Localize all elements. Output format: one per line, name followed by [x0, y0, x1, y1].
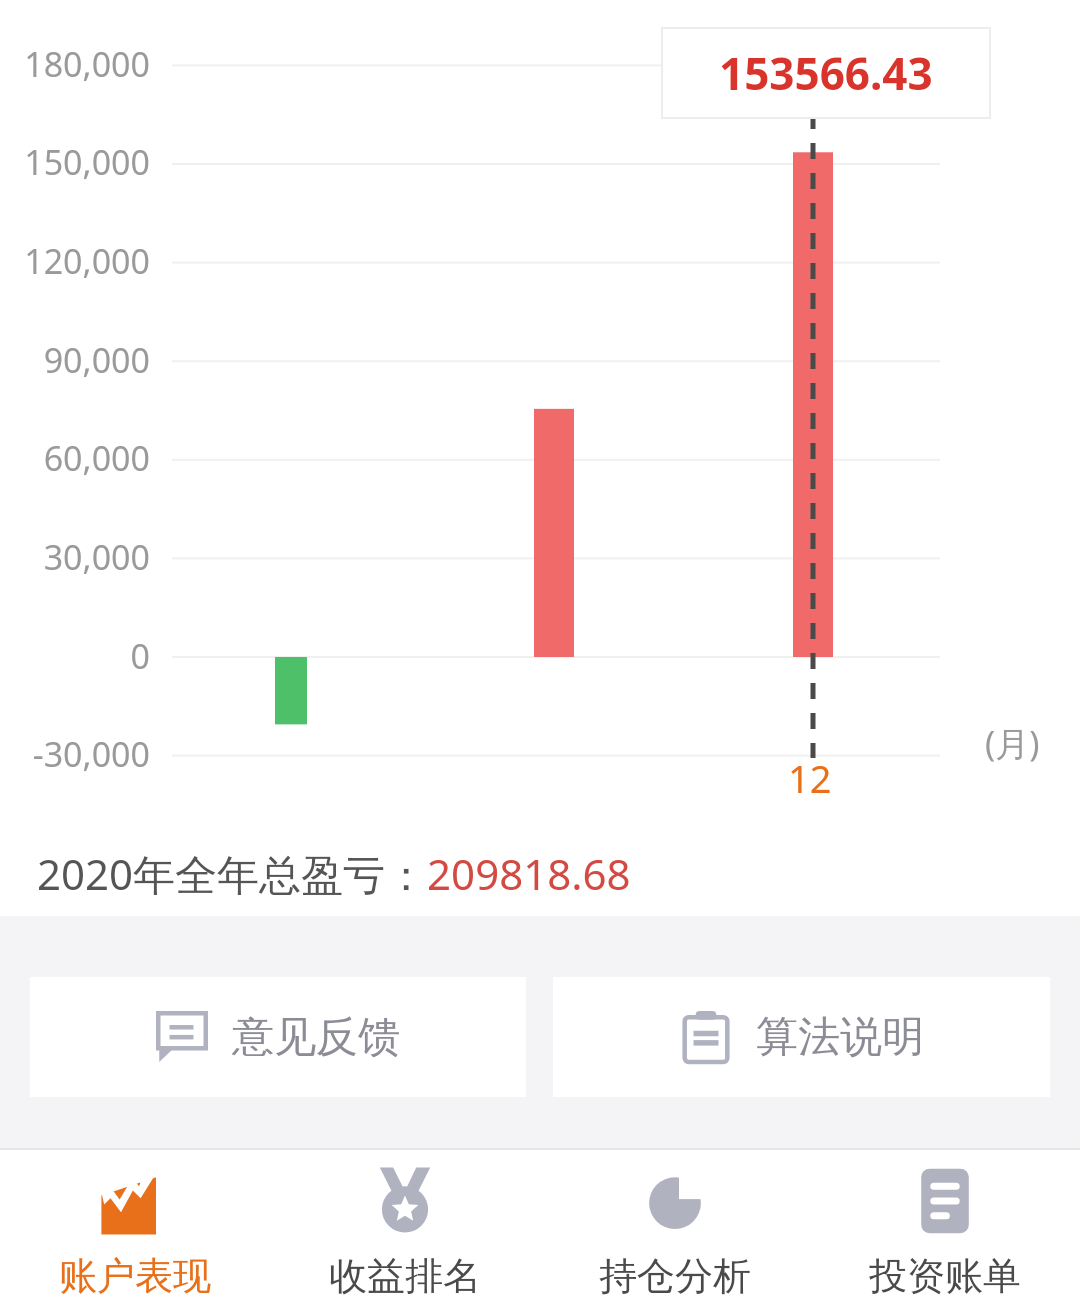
staticText: 0 [0, 633, 150, 679]
staticText: 60,000 [0, 435, 150, 481]
staticText: (月) [985, 720, 1040, 766]
staticText: 150,000 [0, 139, 150, 185]
staticText: 账户表现 [59, 1252, 211, 1300]
staticText: 90,000 [0, 337, 150, 383]
staticText: 2020年全年总盈亏：209818.68 [37, 845, 631, 902]
staticText: 120,000 [0, 238, 150, 284]
staticText: 意见反馈 [232, 1011, 400, 1064]
button[interactable]: 收益排名 [270, 1148, 540, 1311]
staticText: 180,000 [0, 41, 150, 87]
button[interactable]: 持仓分析 [540, 1148, 810, 1311]
staticText: -30,000 [0, 731, 150, 777]
staticText: 收益排名 [329, 1252, 481, 1300]
staticText: 投资账单 [869, 1252, 1021, 1300]
staticText: 算法说明 [756, 1011, 924, 1064]
other: 收益排名 [370, 1166, 440, 1236]
staticText: 153566.43 [719, 43, 933, 103]
staticText: 持仓分析 [599, 1252, 751, 1300]
button[interactable]: 意见反馈 [30, 977, 526, 1097]
other: 账户表现 [100, 1166, 170, 1236]
other: 投资账单 [910, 1166, 980, 1236]
other: 持仓分析 [640, 1166, 710, 1236]
staticText: 30,000 [0, 534, 150, 580]
button[interactable]: 账户表现 [0, 1148, 270, 1311]
staticText: 12 [788, 752, 832, 804]
button[interactable]: 算法说明 [553, 977, 1050, 1097]
button[interactable]: 投资账单 [810, 1148, 1080, 1311]
